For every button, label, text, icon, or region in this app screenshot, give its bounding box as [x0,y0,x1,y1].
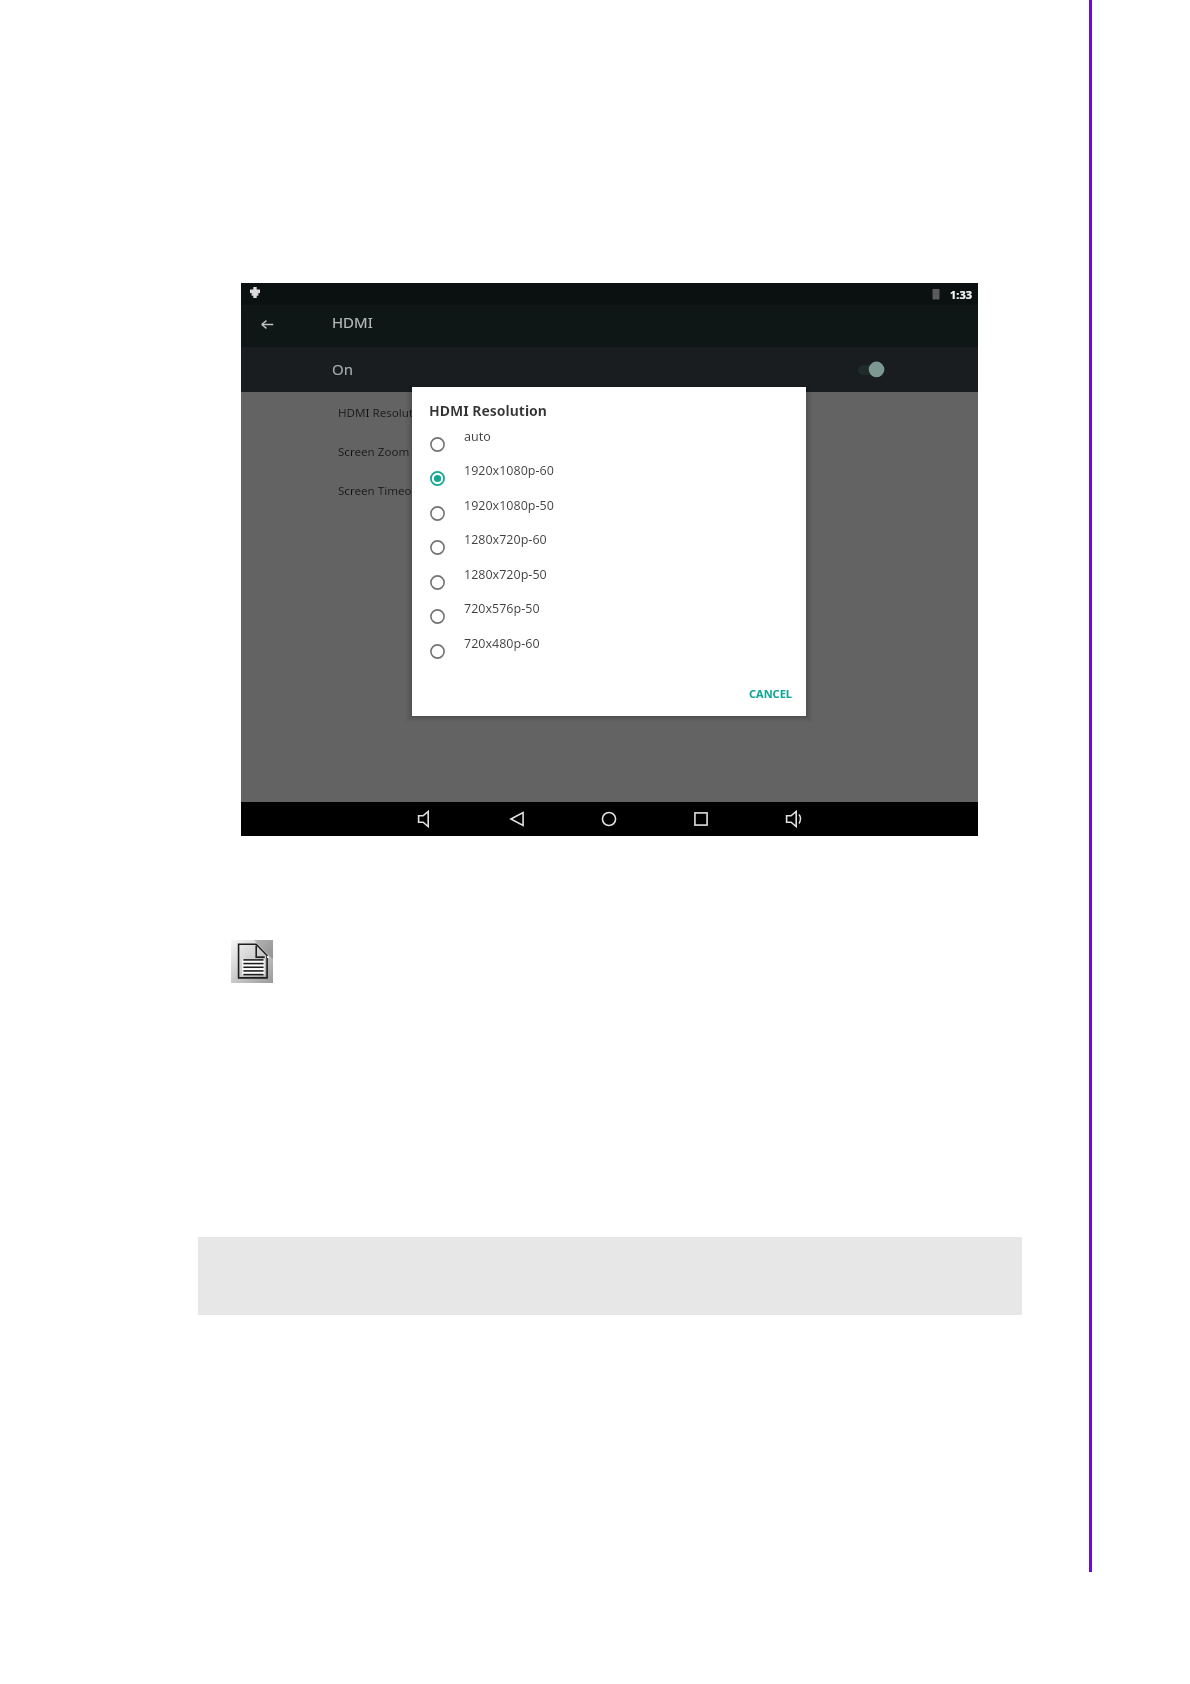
button[interactable]: On [241,347,978,392]
staticText: 1280x720p-50 [464,566,547,583]
staticText: HDMI Resolution [429,401,547,420]
staticText: 1920x1080p-50 [464,497,554,514]
staticText: HDMI [332,312,373,332]
button[interactable]: Volume up [776,802,810,836]
button[interactable]: Screen Timeout [338,474,638,508]
button[interactable]: auto [412,428,806,460]
staticText: CANCEL [749,686,792,701]
staticText: 720x576p-50 [464,600,540,617]
staticText: 1280x720p-60 [464,531,547,548]
button[interactable]: CANCEL [748,684,792,702]
staticText: 1920x1080p-60 [464,462,554,479]
staticText: 720x480p-60 [464,635,540,652]
button[interactable]: 720x480p-60 [412,635,806,667]
staticText: 1:33 [950,287,972,302]
staticText: HDMI Resolution [338,405,431,421]
button[interactable]: 720x576p-50 [412,600,806,632]
button[interactable]: Screen Zoom [338,435,638,469]
button[interactable]: Volume down [408,802,442,836]
button[interactable]: Back [500,802,534,836]
button[interactable]: Recents [684,802,718,836]
staticText: Screen Zoom [338,444,410,460]
button[interactable]: 1280x720p-60 [412,531,806,563]
button[interactable]: HDMI Resolution [338,396,638,430]
staticText: auto [464,428,491,445]
button[interactable]: Back [251,308,283,340]
staticText: Screen Timeout [338,483,423,499]
button[interactable]: Home [592,802,626,836]
button[interactable]: 1280x720p-50 [412,566,806,598]
button[interactable]: 1920x1080p-50 [412,497,806,529]
staticText: On [332,359,353,379]
button[interactable]: 1920x1080p-60 [412,462,806,494]
